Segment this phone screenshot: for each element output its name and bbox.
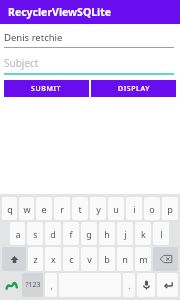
button[interactable]: g <box>81 222 97 245</box>
button[interactable]: d <box>45 222 61 245</box>
staticText: t <box>78 203 82 215</box>
button[interactable]: l <box>153 222 169 245</box>
button[interactable]: u <box>108 197 124 220</box>
button[interactable]: Handwriting input <box>2 273 20 297</box>
staticText: w <box>23 203 31 215</box>
button[interactable]: x <box>45 247 61 271</box>
button[interactable]: t <box>72 197 88 220</box>
button[interactable]: h <box>99 222 115 245</box>
button[interactable]: e <box>36 197 52 220</box>
button[interactable]: z <box>28 247 43 271</box>
button[interactable]: o <box>144 197 160 220</box>
button[interactable]: k <box>135 222 151 245</box>
staticText: RecyclerViewSQLite <box>8 5 112 19</box>
staticText: q <box>7 203 13 215</box>
button[interactable]: DISPLAY <box>91 80 176 97</box>
staticText: z <box>33 253 38 265</box>
staticText: Subject <box>4 56 39 70</box>
staticText: h <box>104 228 110 240</box>
button[interactable]: j <box>117 222 133 245</box>
button[interactable]: Voice input <box>137 273 155 297</box>
staticText: v <box>87 253 92 265</box>
staticText: d <box>50 228 56 240</box>
staticText: l <box>160 228 163 240</box>
button[interactable]: v <box>81 247 97 271</box>
staticText: . <box>128 280 131 291</box>
button[interactable]: i <box>126 197 142 220</box>
button[interactable]: r <box>54 197 70 220</box>
staticText: m <box>139 253 148 265</box>
staticText: x <box>51 253 56 265</box>
staticText: s <box>33 228 38 240</box>
staticText: y <box>96 203 101 215</box>
staticText: g <box>86 228 92 240</box>
staticText: j <box>124 228 127 240</box>
button[interactable]: f <box>63 222 79 245</box>
staticText: i <box>133 203 136 215</box>
button[interactable]: s <box>27 222 43 245</box>
button[interactable]: a <box>10 222 25 245</box>
button[interactable]: SUBMIT <box>4 80 89 97</box>
staticText: e <box>41 203 47 215</box>
staticText: o <box>149 203 155 215</box>
button[interactable]: ?123 <box>22 273 43 297</box>
button[interactable]: . <box>123 273 135 297</box>
staticText: ?123 <box>25 280 41 290</box>
staticText: b <box>104 253 110 265</box>
button[interactable]: b <box>99 247 115 271</box>
button[interactable]: , <box>45 273 57 297</box>
button[interactable]: Enter <box>157 273 178 297</box>
button[interactable]: y <box>90 197 106 220</box>
button[interactable]: w <box>19 197 34 220</box>
staticText: n <box>122 253 128 265</box>
button[interactable]: Denis retchie <box>4 31 174 44</box>
staticText: c <box>69 253 74 265</box>
button[interactable]: Shift <box>2 247 26 271</box>
staticText: Denis retchie <box>4 31 63 44</box>
staticText: SUBMIT <box>31 84 62 94</box>
button[interactable]: Subject <box>4 56 174 70</box>
staticText: DISPLAY <box>118 84 150 94</box>
staticText: p <box>167 203 173 215</box>
staticText: , <box>50 280 53 291</box>
button[interactable]: p <box>162 197 178 220</box>
staticText: k <box>141 228 146 240</box>
staticText: u <box>113 203 119 215</box>
button[interactable]: c <box>63 247 79 271</box>
button[interactable]: q <box>2 197 17 220</box>
button[interactable]: n <box>117 247 133 271</box>
button[interactable]: m <box>135 247 151 271</box>
staticText: r <box>60 203 64 215</box>
staticText: f <box>69 228 73 240</box>
staticText: a <box>15 228 21 240</box>
button[interactable]: Backspace <box>153 247 178 271</box>
